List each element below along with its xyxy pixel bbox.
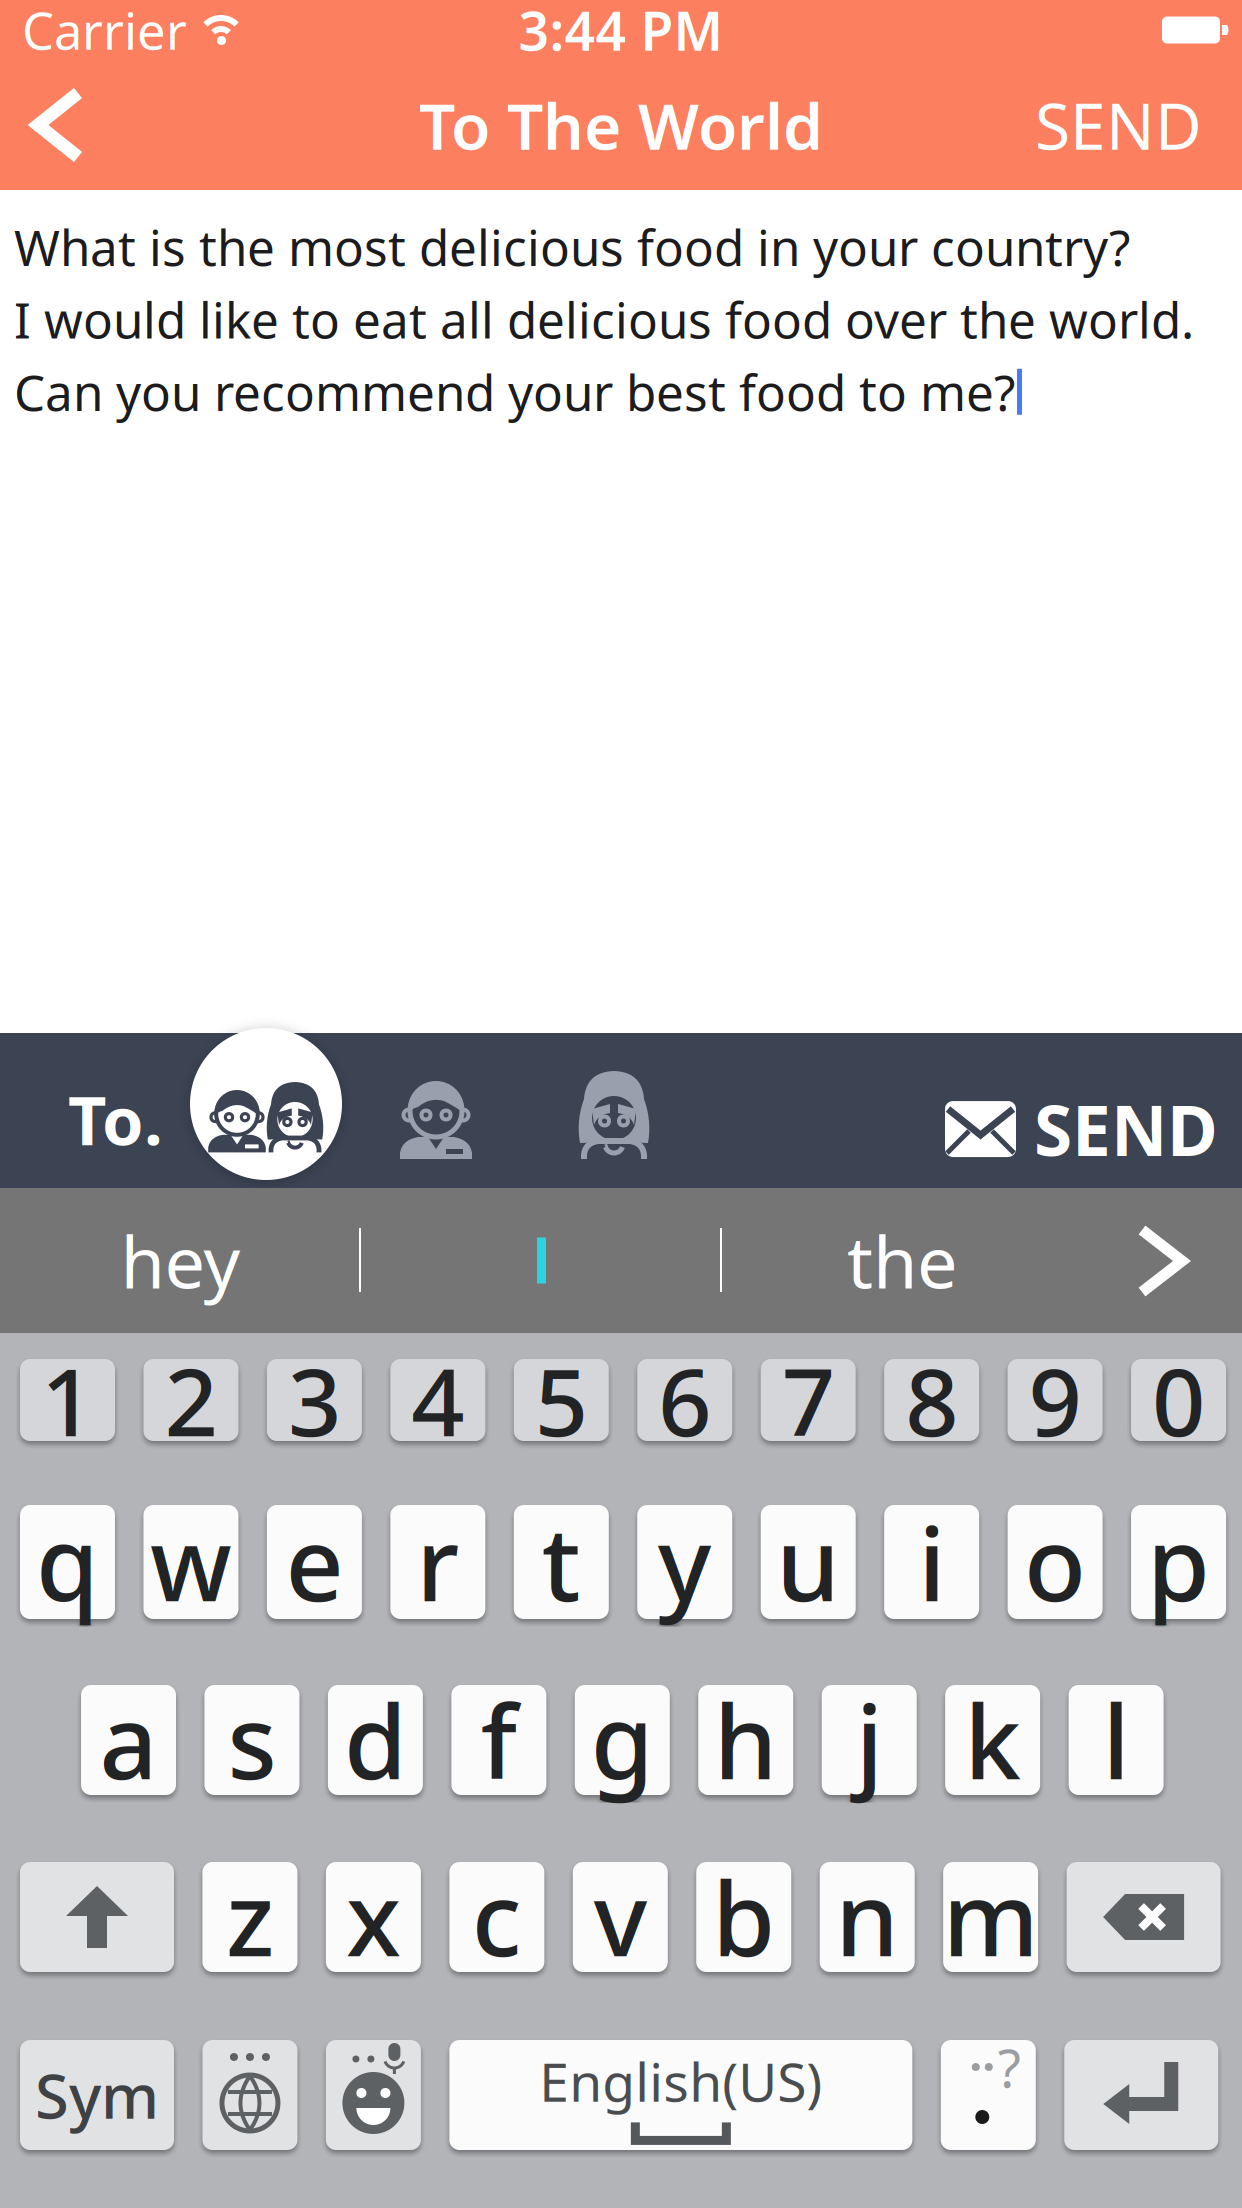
staticText: s (227, 1673, 276, 1807)
button[interactable] (202, 2040, 297, 2150)
button[interactable]: r (390, 1505, 485, 1619)
button[interactable]: 3 (267, 1359, 362, 1441)
staticText: o (1024, 1495, 1086, 1629)
button[interactable]: d (328, 1685, 423, 1795)
button[interactable]: Sym (20, 2040, 174, 2150)
button[interactable]: z (202, 1862, 297, 1972)
button[interactable]: p (1131, 1505, 1226, 1619)
staticText: 9 (1029, 1338, 1082, 1462)
staticText: y (658, 1495, 712, 1629)
staticText: 3 (288, 1338, 341, 1462)
staticText: What is the most delicious food in your … (14, 214, 1130, 279)
button[interactable] (388, 1063, 484, 1159)
staticText: g (591, 1673, 654, 1807)
staticText: Carrier (22, 0, 187, 64)
button[interactable] (326, 2040, 421, 2150)
staticText: To. (68, 1075, 163, 1163)
staticText: SEND (1034, 1083, 1218, 1175)
button[interactable]: 7 (761, 1359, 856, 1441)
staticText: To The World (419, 82, 823, 167)
staticText: hey (120, 1213, 240, 1308)
staticText: 5 (535, 1338, 588, 1462)
staticText: Can you recommend your best food to me? (14, 359, 1015, 424)
staticText: z (226, 1850, 274, 1984)
staticText: the (847, 1213, 958, 1308)
staticText: c (472, 1850, 522, 1984)
button[interactable]: s (204, 1685, 299, 1795)
button[interactable]: 5 (514, 1359, 609, 1441)
button[interactable]: x (326, 1862, 421, 1972)
staticText: 6 (658, 1338, 711, 1462)
button[interactable] (190, 1028, 342, 1180)
button[interactable]: f (451, 1685, 546, 1795)
button[interactable] (20, 1862, 174, 1972)
button[interactable]: 0 (1131, 1359, 1226, 1441)
button[interactable]: w (143, 1505, 238, 1619)
button[interactable]: i (884, 1505, 979, 1619)
button[interactable] (361, 1188, 722, 1333)
button[interactable]: SEND (945, 1083, 1218, 1175)
button[interactable] (1064, 2040, 1218, 2150)
button[interactable]: English(US) (449, 2040, 912, 2150)
staticText: 1 (41, 1338, 94, 1462)
staticText: 8 (905, 1338, 958, 1462)
staticText: 2 (164, 1338, 217, 1462)
staticText: 7 (782, 1338, 835, 1462)
staticText: 3:44 PM (518, 0, 723, 65)
staticText: English(US) (539, 2046, 822, 2116)
button[interactable]: 8 (884, 1359, 979, 1441)
button[interactable]: v (573, 1862, 668, 1972)
button[interactable]: y (637, 1505, 732, 1619)
staticText: 0 (1152, 1338, 1205, 1462)
button[interactable]: c (449, 1862, 544, 1972)
staticText: h (714, 1673, 778, 1807)
staticText: m (943, 1850, 1039, 1984)
staticText: k (964, 1673, 1021, 1807)
staticText: t (542, 1495, 581, 1629)
button[interactable]: n (820, 1862, 915, 1972)
button[interactable]: a (81, 1685, 176, 1795)
button[interactable] (0, 93, 78, 157)
staticText: u (776, 1495, 840, 1629)
staticText: v (594, 1850, 647, 1984)
staticText: e (285, 1495, 343, 1629)
staticText: j (856, 1673, 883, 1807)
staticText: SEND (1035, 82, 1202, 167)
button[interactable]: l (1069, 1685, 1164, 1795)
button[interactable]: e (267, 1505, 362, 1619)
staticText: ? (998, 2032, 1021, 2102)
button[interactable]: SEND (1035, 82, 1242, 167)
staticText: Sym (35, 2054, 159, 2136)
button[interactable]: k (945, 1685, 1040, 1795)
staticText: a (99, 1673, 157, 1807)
staticText: r (416, 1495, 459, 1629)
button[interactable]: u (761, 1505, 856, 1619)
button[interactable]: hey (0, 1188, 361, 1333)
button[interactable]: 4 (390, 1359, 485, 1441)
button[interactable] (566, 1063, 662, 1159)
staticText: i (918, 1495, 945, 1629)
button[interactable] (1142, 1230, 1182, 1292)
staticText: d (344, 1673, 407, 1807)
button[interactable]: t (514, 1505, 609, 1619)
button[interactable]: the (722, 1188, 1083, 1333)
staticText: n (835, 1850, 899, 1984)
button[interactable]: 2 (143, 1359, 238, 1441)
button[interactable]: j (822, 1685, 917, 1795)
button[interactable]: q (20, 1505, 115, 1619)
staticText: I would like to eat all delicious food o… (14, 286, 1194, 352)
button[interactable]: b (696, 1862, 791, 1972)
button[interactable] (1067, 1862, 1221, 1972)
staticText: b (712, 1850, 775, 1984)
staticText: f (481, 1673, 517, 1807)
staticText: q (36, 1495, 99, 1629)
staticText: x (346, 1850, 401, 1984)
button[interactable]: h (698, 1685, 793, 1795)
button[interactable]: 6 (637, 1359, 732, 1441)
button[interactable]: ? (941, 2040, 1036, 2150)
button[interactable]: o (1008, 1505, 1103, 1619)
button[interactable]: 9 (1008, 1359, 1103, 1441)
button[interactable]: 1 (20, 1359, 115, 1441)
button[interactable]: g (575, 1685, 670, 1795)
button[interactable]: m (943, 1862, 1038, 1972)
